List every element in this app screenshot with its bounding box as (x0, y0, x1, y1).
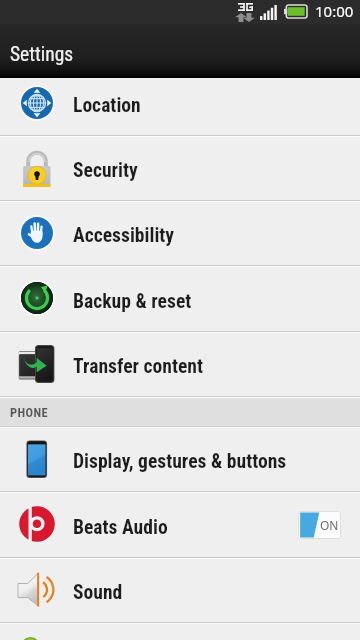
staticText: Accessibility (73, 224, 175, 247)
button[interactable]: Location (0, 78, 360, 135)
staticText: Settings (10, 43, 74, 66)
button[interactable]: Beats Audio on (298, 511, 341, 539)
staticText: Backup & reset (73, 290, 192, 313)
staticText: 10:00 (315, 1, 354, 21)
button[interactable]: Display, gestures & buttons (0, 428, 360, 491)
button[interactable]: Sound (0, 559, 360, 622)
staticText: PHONE (10, 405, 49, 420)
staticText: Beats Audio (73, 516, 168, 539)
staticText: Security (73, 159, 138, 182)
staticText: ON (320, 517, 339, 533)
staticText: Display, gestures & buttons (73, 450, 287, 473)
staticText: Sound (73, 581, 123, 604)
button[interactable]: Security (0, 137, 360, 200)
button[interactable]: Backup & reset (0, 267, 360, 331)
button[interactable]: Accessibility (0, 202, 360, 265)
button[interactable]: Beats Audio (0, 493, 360, 557)
button[interactable]: Transfer content (0, 333, 360, 396)
staticText: Transfer content (73, 355, 203, 378)
staticText: Location (73, 94, 141, 117)
